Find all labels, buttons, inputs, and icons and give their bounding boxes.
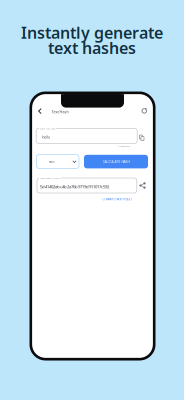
staticText: CALCULATE HASH (102, 159, 129, 164)
button[interactable]: MD5 (36, 154, 79, 168)
button[interactable]: Share (137, 180, 148, 191)
button[interactable]: Back (34, 105, 46, 117)
staticText: 5 characters (118, 144, 130, 148)
staticText: Hash result (MD5) (40, 177, 60, 180)
button[interactable]: COMPARE HASH RESULT (102, 197, 131, 201)
staticText: Text Hash (51, 109, 68, 114)
button[interactable]: Reset (138, 105, 150, 117)
staticText: 5d41402abc4b2a76b9719d911017c592 (40, 184, 109, 189)
staticText: MD5 (49, 160, 54, 163)
staticText: hello (42, 135, 50, 139)
staticText: Enter text here (40, 127, 55, 130)
button[interactable]: Copy (137, 133, 147, 143)
staticText: Instantly generate (21, 22, 163, 43)
button[interactable]: CALCULATE HASH (84, 155, 148, 168)
staticText: text hashes (48, 37, 136, 58)
staticText: COMPARE HASH RESULT (102, 197, 131, 201)
